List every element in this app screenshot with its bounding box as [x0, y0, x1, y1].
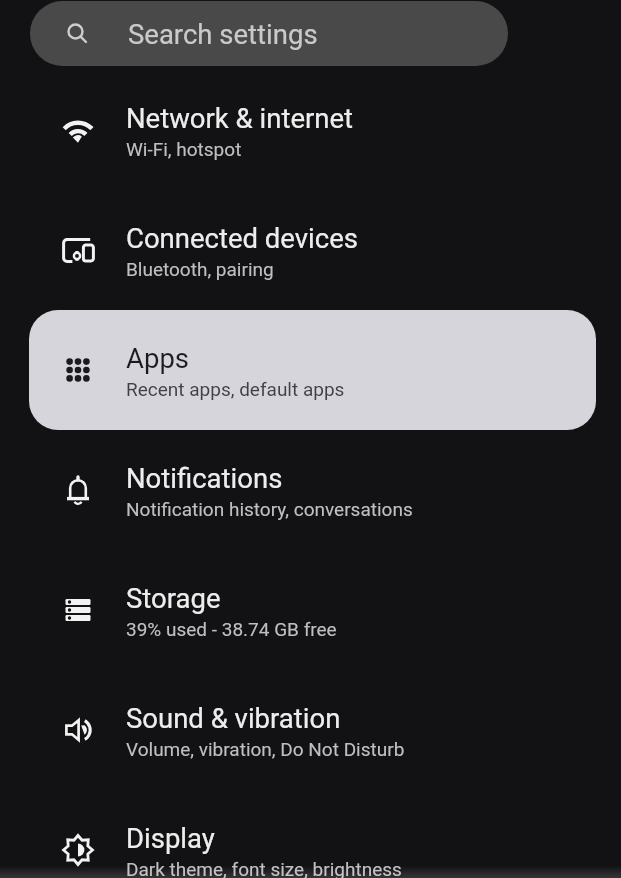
staticText: Volume, vibration, Do Not Disturb: [126, 738, 405, 760]
button[interactable]: Storage: [0, 550, 621, 670]
staticText: Search settings: [128, 18, 318, 50]
button[interactable]: Network & internet: [0, 70, 621, 190]
button[interactable]: Display: [0, 790, 621, 878]
staticText: Notification history, conversations: [126, 498, 413, 520]
staticText: Connected devices: [126, 222, 358, 254]
button[interactable]: Sound & vibration: [0, 670, 621, 790]
staticText: Notifications: [126, 462, 283, 494]
staticText: Wi-Fi, hotspot: [126, 138, 242, 160]
button[interactable]: Notifications: [0, 430, 621, 550]
staticText: 39% used - 38.74 GB free: [126, 618, 337, 640]
staticText: Network & internet: [126, 102, 354, 134]
staticText: Sound & vibration: [126, 702, 341, 734]
button[interactable]: Connected devices: [0, 190, 621, 310]
staticText: Bluetooth, pairing: [126, 258, 274, 280]
staticText: Display: [126, 822, 215, 854]
staticText: Storage: [126, 582, 221, 614]
button[interactable]: Search settings: [30, 1, 508, 66]
button[interactable]: Apps: [29, 310, 596, 430]
staticText: Apps: [126, 342, 190, 374]
staticText: Recent apps, default apps: [126, 378, 345, 400]
staticText: Dark theme, font size, brightness: [126, 858, 402, 878]
